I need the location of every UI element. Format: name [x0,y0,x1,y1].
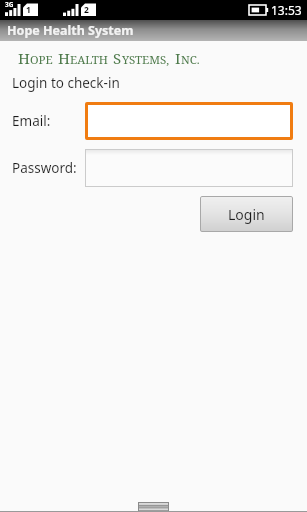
staticText: Email: [12,112,51,130]
staticText: S [113,48,122,68]
staticText: 2 [84,4,89,16]
other: Drag handle [139,503,168,511]
staticText: 13:53 [271,2,302,18]
staticText: I [175,48,181,68]
staticText: Login to check-in [12,74,120,92]
staticText: YSTEMS, [122,52,170,68]
button[interactable] [85,149,293,187]
staticText: Hope Health System [7,22,134,39]
button[interactable]: Login [200,196,293,232]
staticText: 1 [26,4,31,16]
staticText: H [58,48,70,68]
staticText: OPE [30,52,53,68]
staticText: H [18,48,30,68]
staticText: EALTH [70,52,108,68]
staticText: NC. [181,52,200,68]
staticText: Login [228,205,265,224]
staticText: Password: [12,159,77,177]
staticText: 3G [5,0,14,9]
